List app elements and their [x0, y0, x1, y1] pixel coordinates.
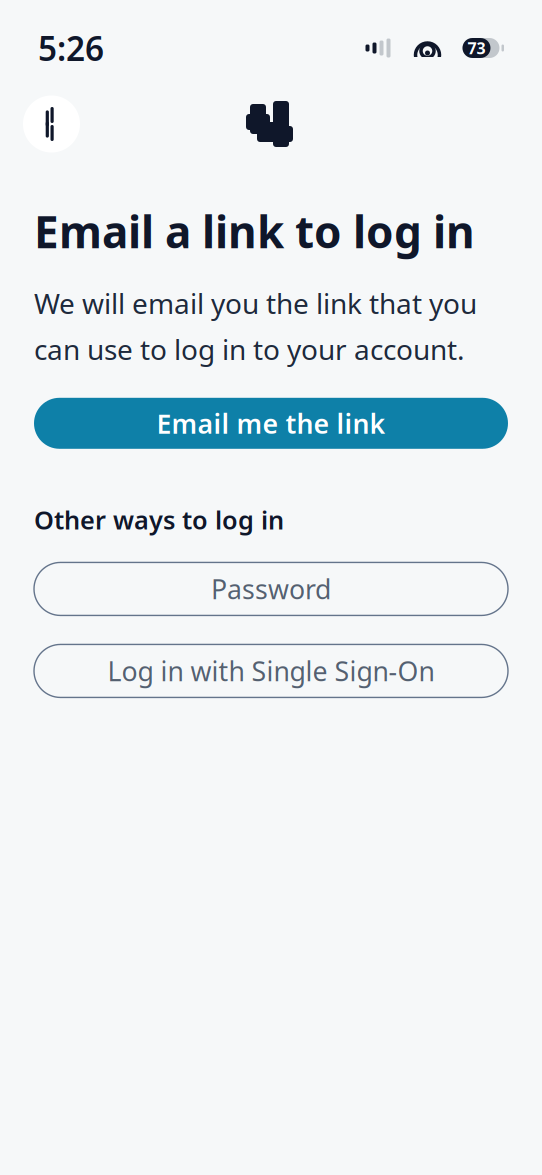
button[interactable]: Password — [34, 562, 508, 615]
staticText: Password — [211, 571, 331, 607]
staticText: Email a link to log in — [34, 202, 475, 260]
staticText: We will email you the link that you can … — [34, 284, 477, 368]
staticText: Email me the link — [156, 406, 385, 441]
staticText: 73 — [467, 37, 485, 59]
button[interactable]: Email me the link — [34, 398, 508, 449]
button[interactable]: Back — [23, 95, 80, 152]
staticText: Other ways to log in — [34, 503, 284, 536]
button[interactable]: Log in with Single Sign-On — [34, 644, 508, 697]
staticText: 5:26 — [38, 26, 104, 70]
staticText: Log in with Single Sign-On — [107, 653, 434, 689]
